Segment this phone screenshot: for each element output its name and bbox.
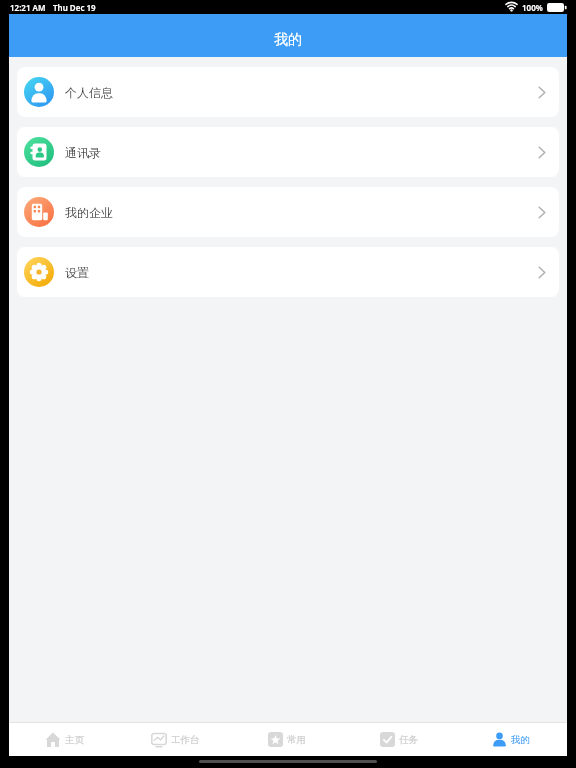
staticText: 通讯录 <box>65 145 101 160</box>
button[interactable]: 常用 <box>231 723 343 756</box>
button[interactable]: 我的 <box>455 723 567 756</box>
staticText: Thu Dec 19 <box>53 2 96 13</box>
button[interactable]: 个人信息 <box>17 67 559 117</box>
button[interactable]: 我的企业 <box>17 187 559 237</box>
button[interactable]: 工作台 <box>120 723 231 756</box>
staticText: 常用 <box>287 734 306 746</box>
staticText: 工作台 <box>171 734 200 746</box>
staticText: 任务 <box>399 734 418 746</box>
staticText: 个人信息 <box>65 85 113 100</box>
button[interactable]: 设置 <box>17 247 559 297</box>
staticText: 设置 <box>65 265 89 280</box>
staticText: 我的企业 <box>65 205 113 220</box>
staticText: 100% <box>522 2 543 13</box>
button[interactable]: 任务 <box>343 723 455 756</box>
button[interactable]: 主页 <box>9 723 120 756</box>
button[interactable]: 通讯录 <box>17 127 559 177</box>
staticText: 主页 <box>65 734 84 746</box>
staticText: 我的 <box>274 31 302 49</box>
staticText: 我的 <box>511 734 530 746</box>
staticText: 12:21 AM <box>10 2 46 13</box>
